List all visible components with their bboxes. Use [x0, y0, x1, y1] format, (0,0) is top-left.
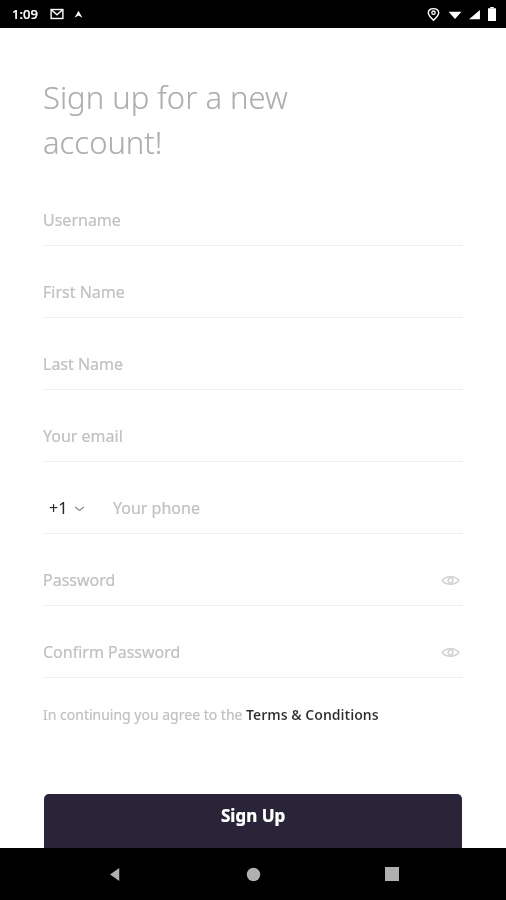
staticText: First Name: [43, 281, 125, 303]
button[interactable]: Show password: [437, 639, 463, 665]
button[interactable]: Username: [43, 195, 463, 267]
staticText: Your email: [43, 425, 123, 447]
button[interactable]: Password: [43, 555, 463, 627]
button[interactable]: Your email: [43, 411, 463, 483]
button[interactable]: Show password: [437, 567, 463, 593]
button[interactable]: Recent apps: [368, 850, 416, 898]
staticText: 1:09: [12, 5, 38, 23]
button[interactable]: In continuing you agree to the Terms & C…: [43, 705, 379, 724]
button[interactable]: Sign Up: [44, 794, 462, 848]
staticText: Sign up for a new account!: [43, 76, 288, 163]
button[interactable]: Back: [91, 850, 139, 898]
staticText: Last Name: [43, 353, 124, 375]
staticText: Confirm Password: [43, 641, 181, 663]
button[interactable]: +1: [43, 497, 89, 519]
staticText: Username: [43, 209, 121, 231]
staticText: Sign Up: [221, 804, 286, 827]
button[interactable]: First Name: [43, 267, 463, 339]
button[interactable]: Home: [229, 850, 277, 898]
button[interactable]: Confirm Password: [43, 627, 463, 699]
button[interactable]: Last Name: [43, 339, 463, 411]
staticText: Password: [43, 569, 116, 591]
staticText: Your phone: [113, 497, 200, 519]
button[interactable]: Your phone: [113, 483, 463, 533]
staticText: +1: [49, 497, 68, 519]
